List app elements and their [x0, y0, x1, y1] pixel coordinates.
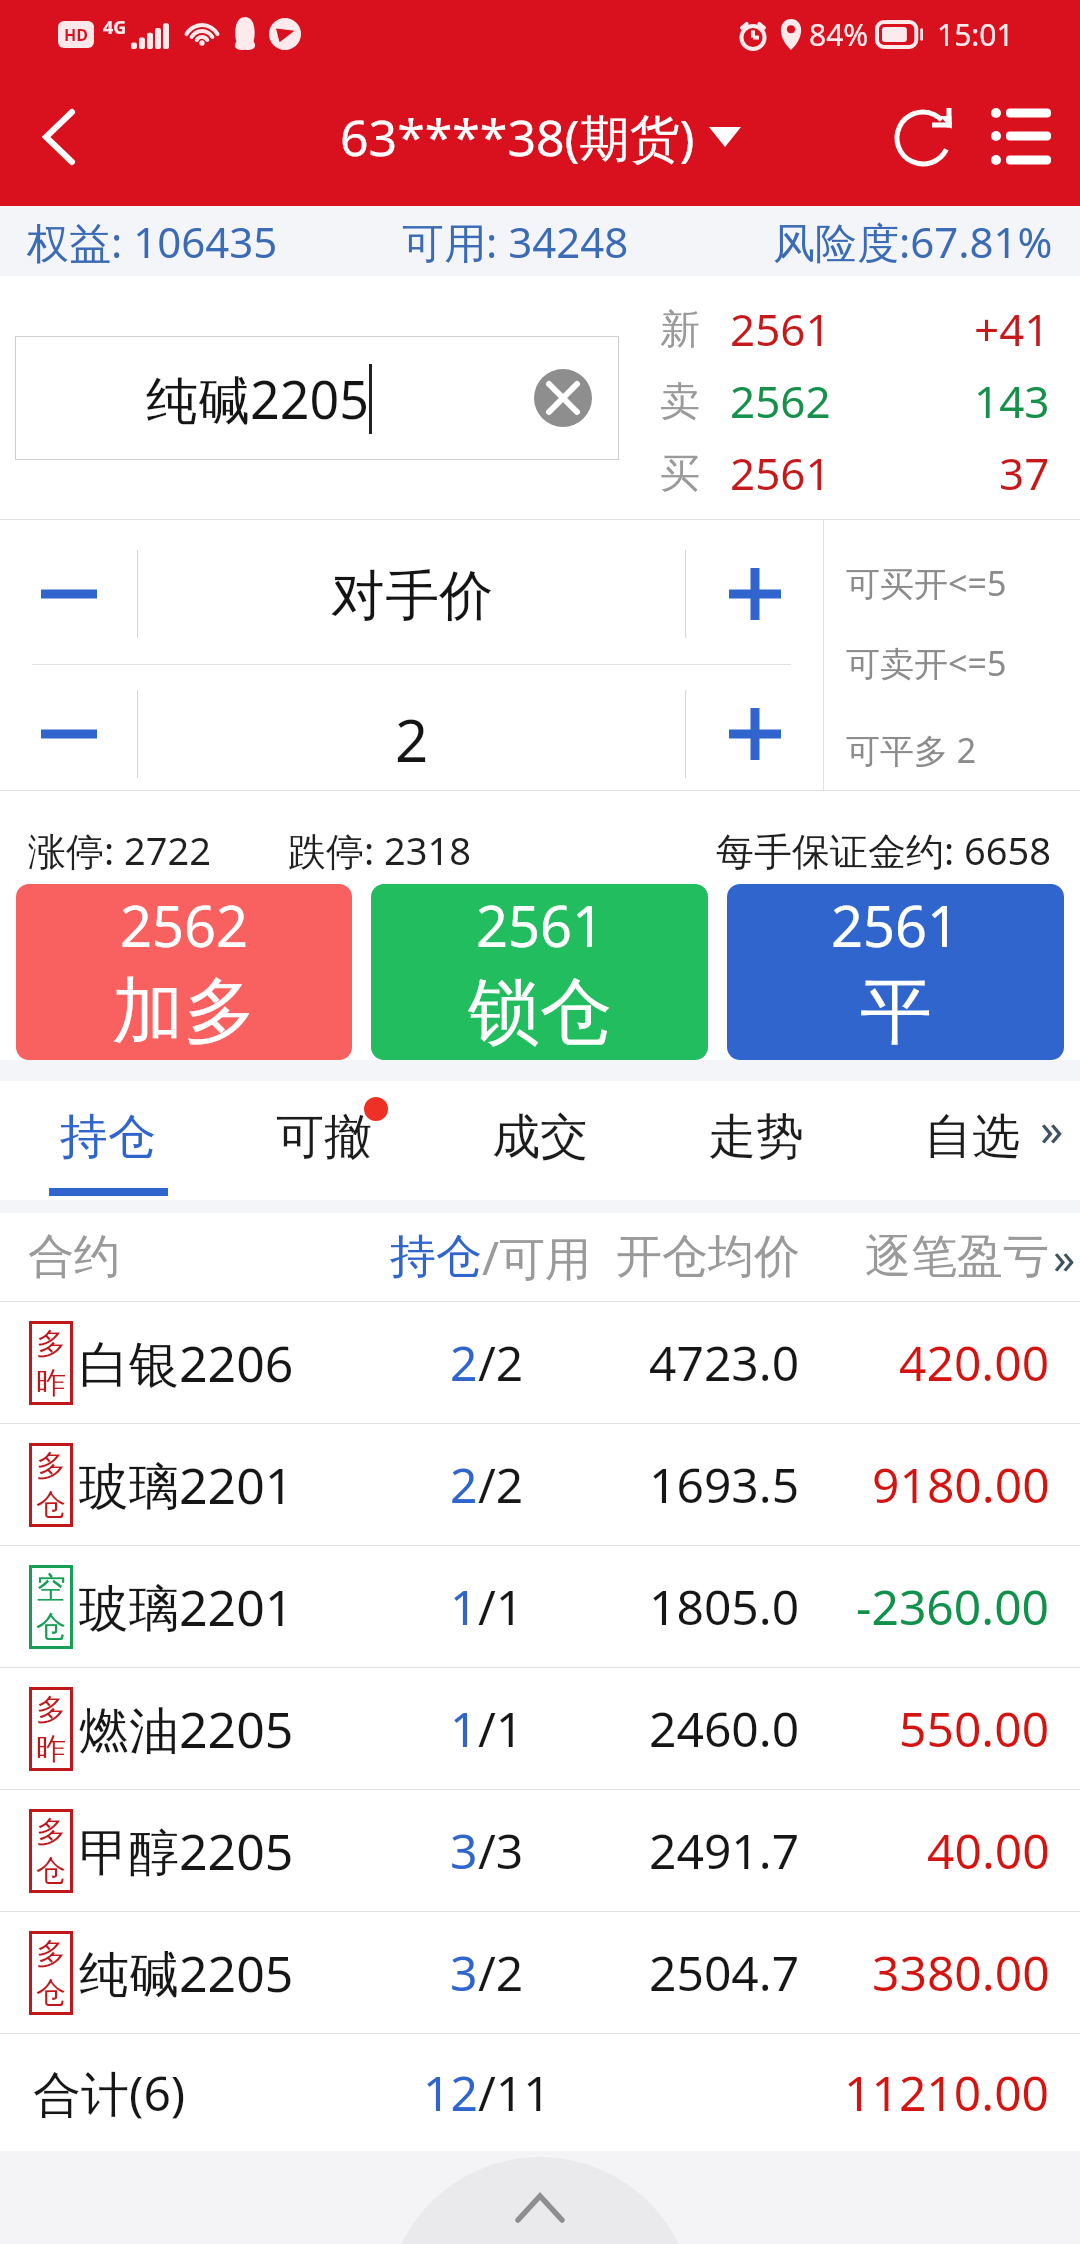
staticText: 2562 — [730, 371, 831, 431]
staticText: /11 — [478, 2060, 551, 2125]
button[interactable]: 多 — [0, 1668, 1080, 1789]
staticText: » — [1053, 1227, 1076, 1287]
staticText: 4723.0 — [649, 1330, 800, 1395]
staticText: 2460.0 — [649, 1696, 800, 1761]
staticText: 玻璃2201 — [79, 1451, 294, 1519]
button[interactable]: More tabs — [1026, 1097, 1078, 1149]
staticText: 白银2206 — [79, 1329, 294, 1397]
staticText: 143 — [974, 371, 1050, 431]
button[interactable]: 纯碱2205 — [15, 336, 619, 460]
staticText: 自选 — [924, 1107, 1020, 1167]
button[interactable]: 开仓均价 — [616, 1213, 800, 1301]
staticText: 3 — [450, 1818, 478, 1883]
staticText: 多 — [36, 1447, 66, 1485]
staticText: 9180.00 — [872, 1452, 1050, 1517]
staticText: 新 — [660, 304, 700, 354]
button[interactable]: 2561 — [727, 884, 1064, 1060]
staticText: 84% — [809, 14, 869, 55]
staticText: 4G — [103, 15, 127, 40]
button[interactable]: 逐笔盈亏 — [865, 1213, 1076, 1301]
staticText: -2360.00 — [856, 1574, 1050, 1639]
staticText: 2 — [450, 1452, 478, 1517]
button[interactable]: 持仓 — [390, 1213, 592, 1301]
staticText: /1 — [478, 1574, 524, 1639]
staticText: 空 — [36, 1569, 66, 1607]
staticText: 昨 — [36, 1364, 66, 1402]
button[interactable]: 权益: 106435 — [0, 206, 1080, 276]
staticText: 仓 — [36, 1608, 66, 1646]
button[interactable]: 成交 — [432, 1081, 648, 1200]
staticText: 1805.0 — [649, 1574, 800, 1639]
staticText: 卖 — [660, 376, 700, 426]
staticText: 3 — [450, 1940, 478, 2005]
staticText: 2561 — [730, 443, 831, 503]
staticText: 仓 — [36, 1974, 66, 2012]
staticText: 锁仓 — [468, 967, 612, 1058]
staticText: 1 — [450, 1696, 478, 1761]
staticText: 420.00 — [899, 1330, 1050, 1395]
button[interactable]: Decrease — [0, 665, 137, 790]
staticText: 2561 — [831, 887, 960, 963]
staticText: /1 — [478, 1696, 524, 1761]
staticText: 加多 — [112, 967, 256, 1058]
button[interactable]: 多 — [0, 1912, 1080, 2033]
button[interactable]: Decrease — [0, 520, 137, 664]
staticText: 可平多 2 — [846, 727, 977, 773]
staticText: 2 — [395, 700, 429, 779]
staticText: 2491.7 — [649, 1818, 800, 1883]
staticText: 1693.5 — [649, 1452, 800, 1517]
staticText: 纯碱2205 — [146, 363, 369, 434]
button[interactable]: 2561 — [371, 884, 708, 1060]
staticText: 买 — [660, 448, 700, 498]
button[interactable]: 走势 — [648, 1081, 864, 1200]
button[interactable]: 可撤 — [216, 1081, 432, 1200]
staticText: 昨 — [36, 1730, 66, 1768]
staticText: 可卖开<=5 — [846, 640, 1007, 686]
staticText: 可买开<=5 — [846, 560, 1007, 606]
staticText: 纯碱2205 — [79, 1939, 294, 2007]
staticText: 1 — [450, 1574, 478, 1639]
staticText: 可撤 — [276, 1107, 372, 1167]
staticText: 合约 — [28, 1228, 120, 1286]
staticText: 多 — [36, 1325, 66, 1363]
button[interactable]: 多 — [0, 1424, 1080, 1545]
staticText: 每手保证金约: 6658 — [716, 824, 1052, 876]
staticText: 风险度:67.81% — [773, 213, 1053, 270]
staticText: 11210.00 — [844, 2060, 1050, 2125]
button[interactable]: Back — [0, 68, 118, 206]
staticText: 开仓均价 — [616, 1228, 800, 1286]
button[interactable]: 多 — [0, 1302, 1080, 1423]
button[interactable]: Menu — [974, 68, 1080, 206]
staticText: /2 — [478, 1940, 524, 2005]
staticText: 持仓 — [60, 1107, 156, 1167]
staticText: 63****38(期货) — [340, 103, 695, 171]
button[interactable]: 自选 — [864, 1081, 1080, 1200]
button[interactable]: Refresh — [866, 68, 972, 206]
staticText: 权益: 106435 — [27, 213, 278, 270]
button[interactable]: 63****38(期货) — [340, 103, 741, 171]
staticText: +41 — [974, 299, 1050, 359]
button[interactable]: Increase — [686, 520, 823, 664]
staticText: /2 — [478, 1330, 524, 1395]
staticText: 2562 — [120, 887, 249, 963]
button[interactable]: 2562 — [16, 884, 352, 1060]
staticText: 40.00 — [927, 1818, 1050, 1883]
staticText: 3380.00 — [872, 1940, 1050, 2005]
staticText: 成交 — [492, 1107, 588, 1167]
button[interactable]: 多 — [0, 1790, 1080, 1911]
staticText: 2561 — [730, 299, 831, 359]
staticText: 燃油2205 — [79, 1695, 294, 1763]
staticText: 合计(6) — [33, 2060, 186, 2126]
button[interactable]: Increase — [686, 665, 823, 790]
button[interactable]: 持仓 — [0, 1081, 216, 1200]
button[interactable]: Expand — [455, 2151, 625, 2243]
button[interactable]: 空 — [0, 1546, 1080, 1667]
staticText: 走势 — [708, 1107, 804, 1167]
button[interactable]: 合计(6) — [0, 2034, 1080, 2151]
staticText: 15:01 — [937, 14, 1014, 55]
staticText: 仓 — [36, 1486, 66, 1524]
staticText: /2 — [478, 1452, 524, 1517]
staticText: /可用 — [482, 1226, 592, 1289]
staticText: /3 — [478, 1818, 524, 1883]
button[interactable]: Clear — [534, 369, 592, 427]
